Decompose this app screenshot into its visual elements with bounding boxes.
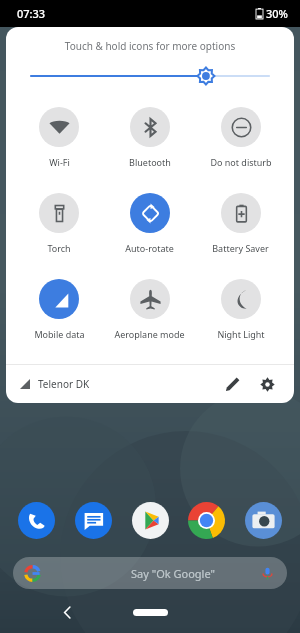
staticText: Aeroplane mode [114,328,185,340]
button[interactable]: Phone [18,502,55,539]
staticText: Telenor DK [38,377,90,391]
button[interactable]: Mobile data [14,277,104,342]
button[interactable]: Back [56,601,78,623]
staticText: Touch & hold icons for more options [6,39,294,53]
button[interactable]: Night Light [195,277,286,342]
button[interactable]: Settings [254,371,280,397]
button[interactable]: Auto-rotate [104,191,195,256]
button[interactable]: Torch [14,191,104,256]
button[interactable]: Play Store [132,502,169,539]
staticText: Torch [47,242,71,254]
button[interactable]: Do not disturb [195,105,286,170]
staticText: Battery Saver [212,242,269,254]
staticText: Say "Ok Google" [131,566,215,581]
staticText: Night Light [217,328,265,340]
staticText: 07:33 [17,6,46,21]
button[interactable]: Home [133,609,168,616]
button[interactable]: Camera [245,502,282,539]
staticText: Do not disturb [210,156,272,168]
button[interactable]: Say "Ok Google" [13,557,287,589]
staticText: 30% [266,6,288,21]
staticText: Wi-Fi [49,156,70,168]
button[interactable]: Aeroplane mode [104,277,195,342]
button[interactable]: Edit [219,371,245,397]
button[interactable]: Wi-Fi [14,105,104,170]
staticText: Mobile data [34,328,85,340]
button[interactable]: Battery Saver [195,191,286,256]
staticText: Auto-rotate [125,242,174,254]
button[interactable]: Messages [75,502,112,539]
button[interactable]: Brightness [31,65,269,87]
button[interactable]: Bluetooth [104,105,195,170]
button[interactable]: Chrome [188,502,225,539]
staticText: Bluetooth [129,156,171,168]
